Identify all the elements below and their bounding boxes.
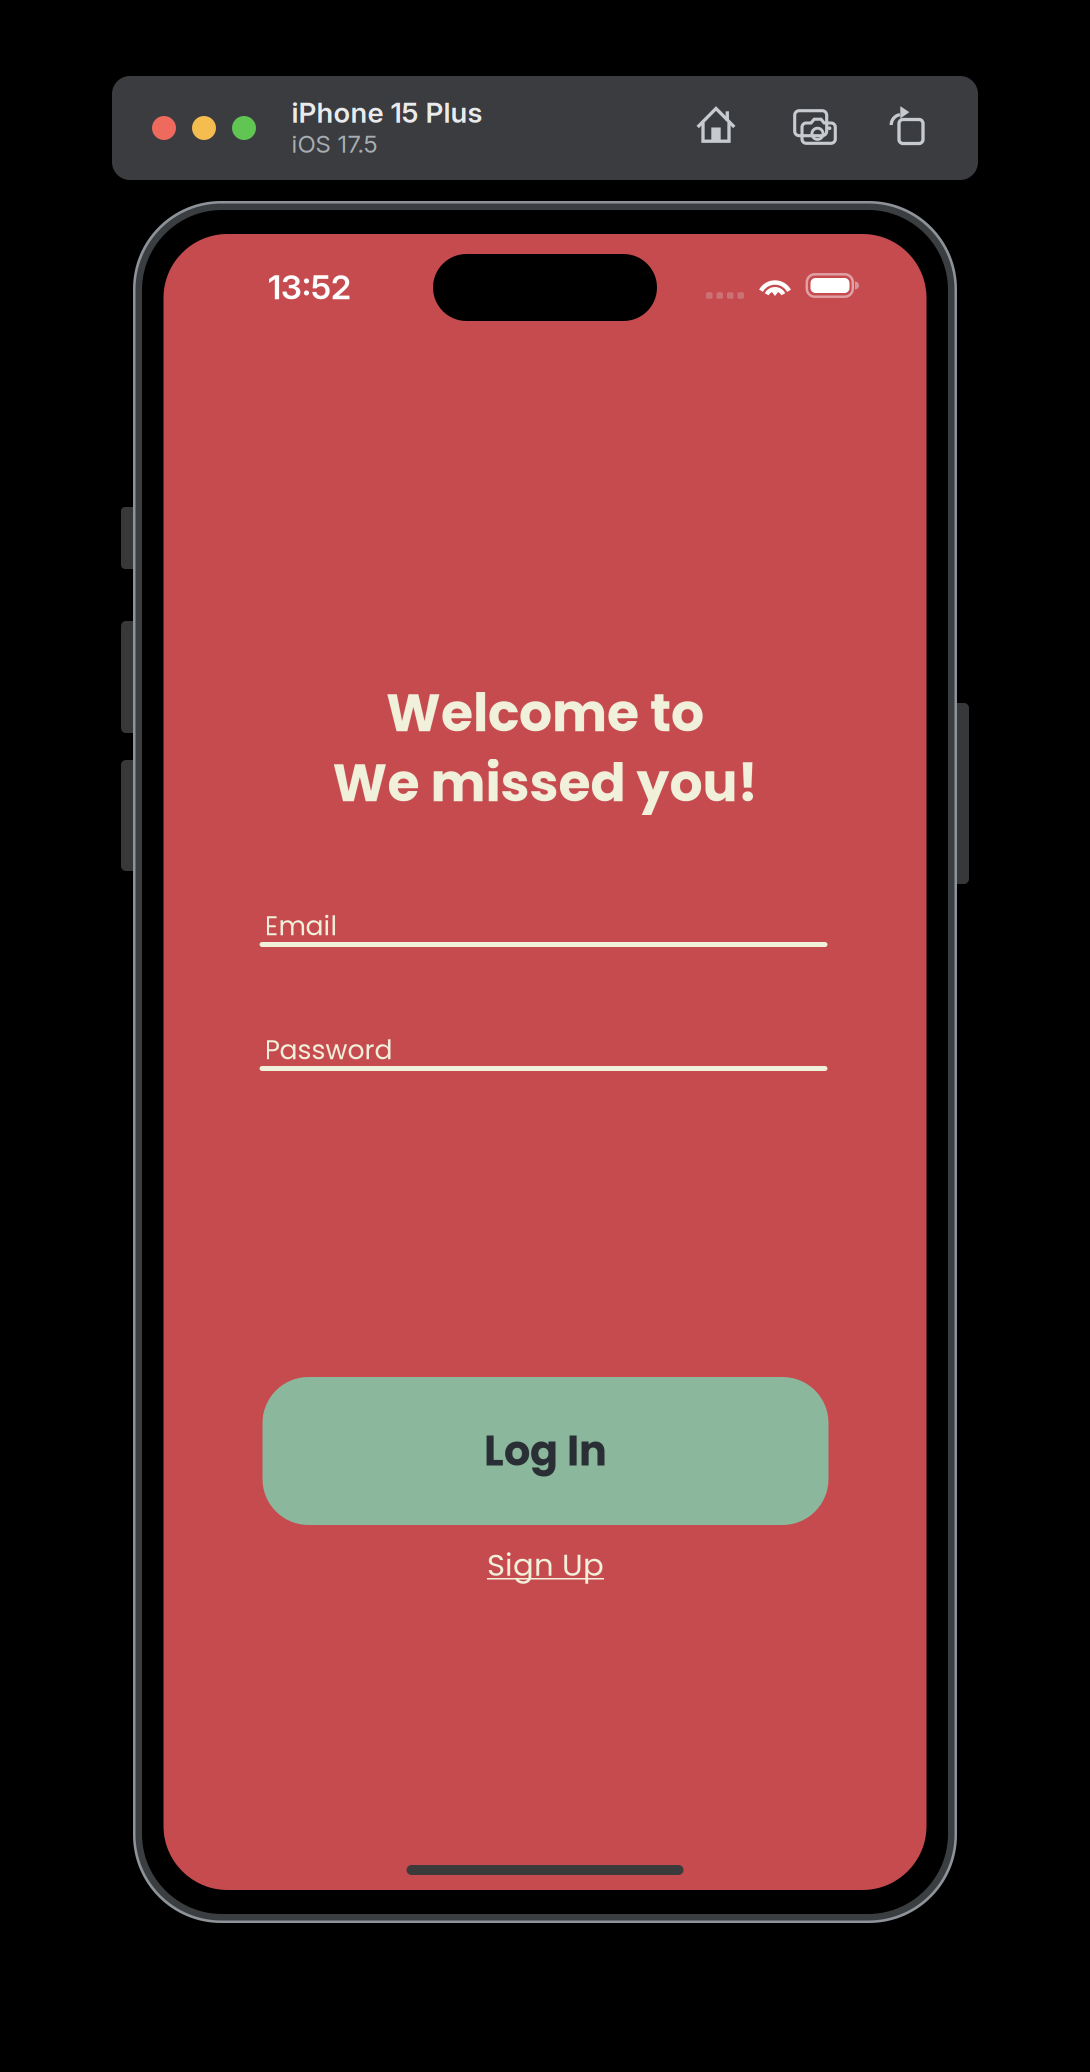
staticText: Log In [484, 1422, 607, 1480]
staticText: We missed you! [332, 747, 757, 819]
staticText: iPhone 15 Plus [291, 95, 482, 129]
button[interactable]: Share [889, 104, 924, 144]
staticText: 13:52 [268, 267, 351, 307]
staticText: Email [264, 907, 337, 945]
button[interactable]: Sign Up [485, 1539, 605, 1591]
staticText: Sign Up [487, 1543, 604, 1586]
button[interactable]: Screenshot [793, 109, 837, 145]
button[interactable]: Log In [262, 1377, 828, 1525]
staticText: Password [264, 1031, 392, 1069]
staticText: Welcome to [386, 677, 704, 749]
staticText: iOS 17.5 [291, 129, 377, 158]
button[interactable]: Home [696, 106, 736, 143]
